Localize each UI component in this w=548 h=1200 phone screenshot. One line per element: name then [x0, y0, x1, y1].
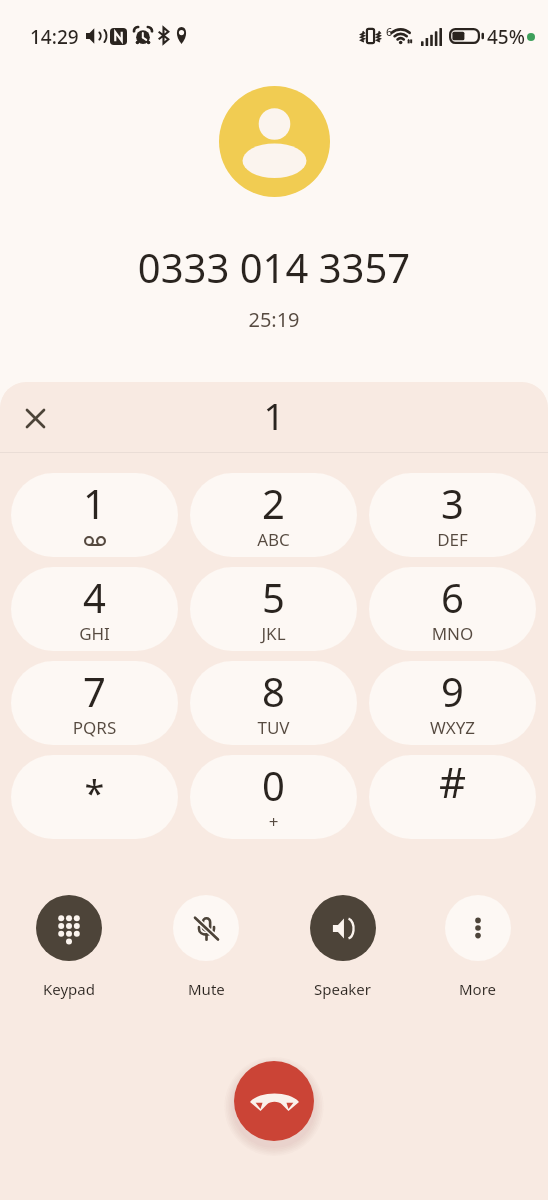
staticText: 25:19 [0, 306, 548, 333]
staticText: DEF [369, 528, 536, 551]
button[interactable]: 7 [11, 661, 178, 745]
staticText: 8 [190, 664, 357, 718]
staticText: 0 [190, 758, 357, 812]
staticText: 3 [369, 476, 536, 530]
button[interactable]: 0 [190, 755, 357, 839]
button[interactable]: End call [234, 1061, 314, 1141]
staticText: * [11, 768, 178, 817]
staticText: # [369, 755, 536, 810]
button[interactable]: 9 [369, 661, 536, 745]
button[interactable]: 8 [190, 661, 357, 745]
button[interactable]: 3 [369, 473, 536, 557]
staticText: 9 [369, 664, 536, 718]
button[interactable]: Speaker [289, 895, 397, 999]
button[interactable]: Clear [17, 400, 54, 437]
staticText: 4 [11, 570, 178, 624]
staticText: 5 [190, 570, 357, 624]
staticText: Mute [188, 979, 225, 999]
button[interactable]: 4 [11, 567, 178, 651]
staticText: 0333 014 3357 [0, 240, 548, 294]
button[interactable]: Mute [152, 895, 260, 999]
staticText: JKL [190, 622, 357, 645]
staticText: 6 [369, 570, 536, 624]
staticText: PQRS [11, 716, 178, 739]
staticText: GHI [11, 622, 178, 645]
staticText: Speaker [314, 979, 372, 999]
button[interactable]: # [369, 755, 536, 839]
button[interactable]: Keypad [15, 895, 123, 999]
button[interactable]: * [11, 755, 178, 839]
staticText: TUV [190, 716, 357, 739]
staticText: ABC [190, 528, 357, 551]
button[interactable]: 6 [369, 567, 536, 651]
staticText: 2 [190, 476, 357, 530]
button[interactable]: 2 [190, 473, 357, 557]
button[interactable]: 5 [190, 567, 357, 651]
staticText: 1 [11, 476, 178, 530]
staticText: More [459, 979, 497, 999]
button[interactable]: More [424, 895, 532, 999]
staticText: 1 [0, 390, 548, 440]
staticText: MNO [369, 622, 536, 645]
button[interactable]: 1 [11, 473, 178, 557]
staticText: 45% [487, 24, 525, 50]
staticText: 6 [386, 24, 393, 39]
staticText: + [190, 810, 357, 833]
staticText: WXYZ [369, 716, 536, 739]
staticText: 7 [11, 664, 178, 718]
staticText: 14:29 [30, 24, 79, 50]
staticText: Keypad [43, 979, 95, 999]
